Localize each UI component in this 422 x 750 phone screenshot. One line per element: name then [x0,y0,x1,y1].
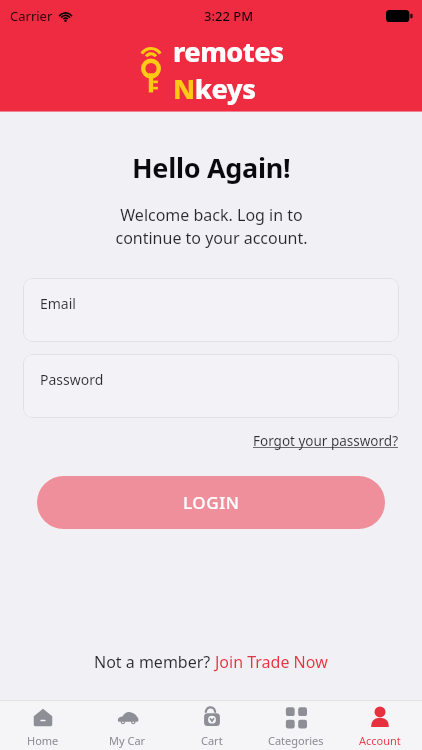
button[interactable]: Cart [170,701,254,750]
button[interactable]: Email [23,278,399,342]
staticText: Nkeys [173,70,256,107]
button[interactable]: Categories [254,701,338,750]
staticText: Carrier [10,7,53,25]
button[interactable]: Password [23,354,399,418]
staticText: My Car [109,733,146,748]
staticText: Welcome back. Log in to continue to your… [115,204,308,249]
staticText: Categories [268,733,324,748]
staticText: remotes [173,33,284,70]
button[interactable]: LOGIN [37,476,385,529]
button[interactable]: My Car [85,701,170,750]
button[interactable]: Join Trade Now [215,651,328,673]
staticText: Not a member? [94,651,215,673]
staticText: Hello Again! [132,149,291,186]
staticText: Password [40,370,104,389]
staticText: Account [359,733,401,748]
staticText: LOGIN [183,491,240,514]
staticText: Email [40,294,76,313]
staticText: Home [27,733,59,748]
button[interactable]: Forgot your password? [253,430,399,452]
button[interactable]: Home [0,701,85,750]
staticText: 3:22 PM [204,7,254,25]
staticText: Cart [201,733,223,748]
button[interactable]: Account [338,701,422,750]
